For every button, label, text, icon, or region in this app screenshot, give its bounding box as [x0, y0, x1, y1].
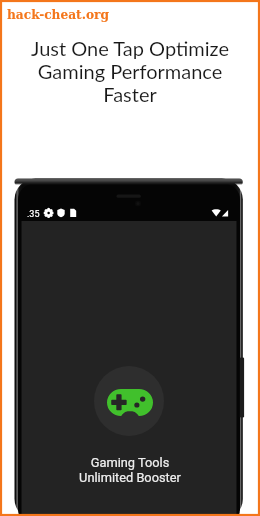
button[interactable]: Boost games — [94, 366, 164, 436]
staticText: Gaming Tools Unlimited Booster — [0, 455, 260, 485]
staticText: hack-cheat.org — [7, 8, 110, 22]
staticText: .35 — [27, 209, 40, 220]
staticText: Just One Tap Optimize Gaming Performance… — [0, 36, 260, 106]
